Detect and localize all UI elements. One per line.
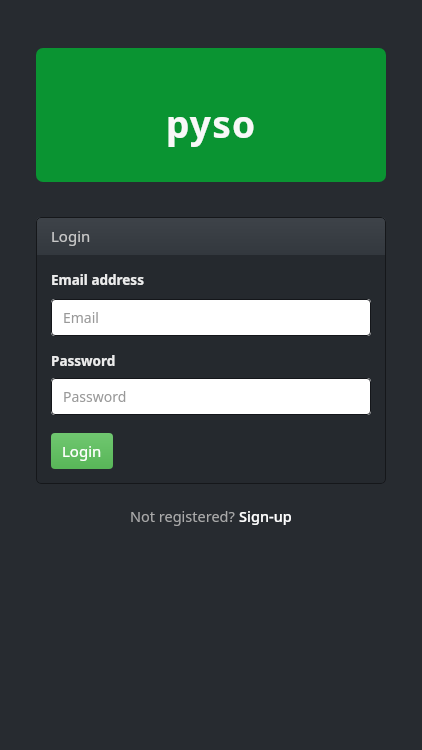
staticText: Email (63, 308, 99, 327)
button[interactable]: Login (51, 433, 113, 469)
staticText: pyso (166, 98, 257, 148)
staticText: Email address (51, 271, 144, 289)
button[interactable]: Email (51, 299, 371, 336)
staticText: Login (51, 226, 91, 246)
staticText: Password (63, 387, 127, 406)
staticText: Password (51, 352, 116, 370)
button[interactable]: Password (51, 378, 371, 415)
staticText: Login (62, 441, 102, 461)
staticText: Not registered? (130, 506, 239, 526)
button[interactable]: Sign-up (239, 506, 292, 526)
